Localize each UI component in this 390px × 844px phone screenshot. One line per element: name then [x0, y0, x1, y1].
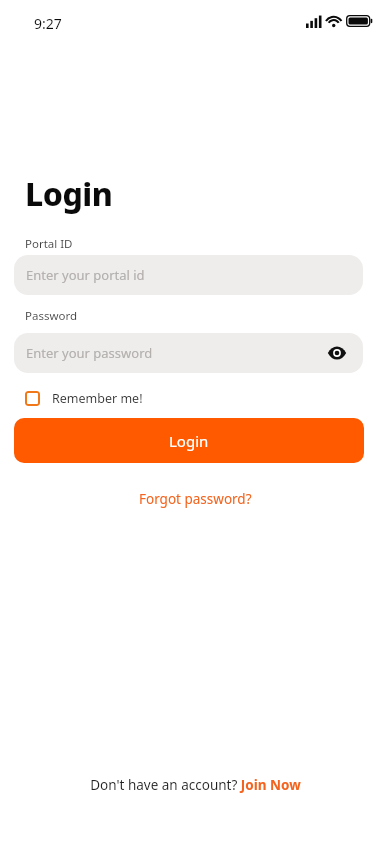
button[interactable]: Enter your password: [14, 333, 363, 373]
button[interactable]: Don't have an account? Join Now: [90, 776, 301, 794]
button[interactable]: Show password: [324, 340, 350, 366]
staticText: Enter your portal id: [26, 266, 145, 284]
button[interactable]: Forgot password?: [139, 490, 252, 508]
staticText: Portal ID: [25, 236, 73, 252]
staticText: Remember me!: [52, 390, 143, 407]
staticText: Don't have an account? Join Now: [90, 776, 301, 794]
staticText: Login: [25, 172, 113, 216]
staticText: Forgot password?: [139, 490, 252, 508]
staticText: 9:27: [34, 14, 62, 33]
staticText: Enter your password: [26, 344, 153, 362]
staticText: Login: [169, 431, 209, 451]
button[interactable]: Enter your portal id: [14, 255, 363, 295]
button[interactable]: Login: [14, 418, 364, 463]
staticText: Password: [25, 308, 78, 324]
button[interactable]: Remember me!: [25, 390, 143, 407]
